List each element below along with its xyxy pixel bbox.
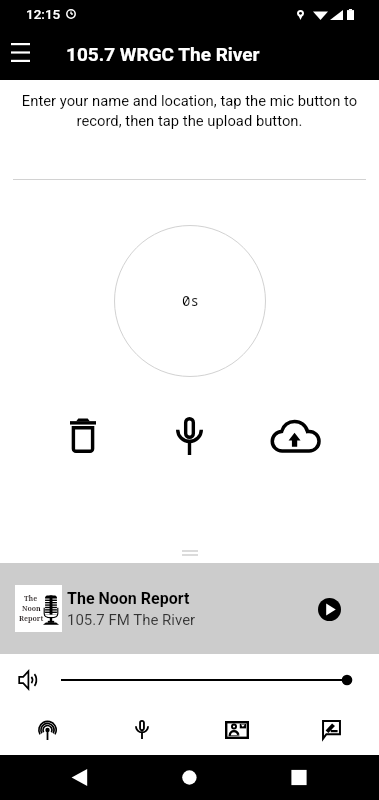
staticText: The xyxy=(24,594,38,604)
button[interactable]: Upload recording xyxy=(268,405,324,461)
staticText: Noon xyxy=(22,604,41,614)
button[interactable]: Record xyxy=(161,405,217,461)
button[interactable]: Volume xyxy=(14,666,42,694)
staticText: 105.7 WRGC The River xyxy=(66,43,260,65)
button[interactable]: Volume slider xyxy=(61,673,347,687)
button[interactable]: Podcasts xyxy=(0,700,94,755)
button[interactable]: Play xyxy=(309,589,349,629)
button[interactable]: Delete recording xyxy=(55,405,111,461)
button[interactable]: Record xyxy=(94,700,189,755)
staticText: 0s xyxy=(182,291,199,310)
staticText: Report xyxy=(19,614,44,624)
staticText: 105.7 FM The River xyxy=(67,611,196,629)
staticText: Enter your name and location, tap the mi… xyxy=(16,92,363,130)
staticText: The Noon Report xyxy=(67,589,190,608)
staticText: 12:15 xyxy=(26,6,61,22)
button[interactable]: Contact xyxy=(189,700,284,755)
button[interactable]: Open navigation menu xyxy=(3,37,37,71)
button[interactable]: Reviews xyxy=(284,700,379,755)
